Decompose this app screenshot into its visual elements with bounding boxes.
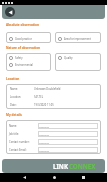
staticText: Location	[6, 77, 20, 81]
button[interactable]: Quality	[55, 56, 73, 60]
button[interactable]: Optional	[38, 147, 98, 153]
staticText: Safety	[15, 56, 23, 60]
staticText: Optional	[39, 141, 50, 144]
staticText: 54?-TEL	[34, 95, 44, 99]
button[interactable]: Good practice	[6, 35, 51, 43]
staticText: Optional	[39, 149, 50, 152]
staticText: Location:	[10, 95, 34, 99]
staticText: Job title:	[9, 132, 38, 136]
button[interactable]: Optional	[38, 123, 98, 129]
staticText: CONNEX	[69, 162, 96, 170]
staticText: Absolute observation	[6, 23, 40, 27]
staticText: Environmental	[15, 63, 33, 67]
button[interactable]: Back	[5, 7, 15, 17]
button[interactable]: Recent apps	[77, 173, 89, 182]
staticText: 19/3/2020 11:05	[34, 103, 54, 107]
staticText: Date:	[10, 103, 34, 107]
button[interactable]: Environmental	[6, 63, 33, 67]
staticText: Quality	[64, 56, 73, 60]
button[interactable]: Safety	[6, 56, 23, 60]
staticText: Contact Email:	[9, 148, 38, 152]
staticText: Optional	[39, 133, 50, 136]
button[interactable]: Area for improvement	[55, 35, 101, 43]
button[interactable]: Home	[48, 173, 60, 182]
staticText: LINK	[53, 162, 69, 170]
staticText: Good practice	[15, 37, 32, 41]
staticText: Optional	[39, 125, 50, 128]
staticText: Area for improvement	[64, 37, 91, 41]
staticText: Name:	[10, 87, 34, 91]
staticText: Unknown Doublefield	[34, 87, 61, 91]
button[interactable]: Back	[18, 173, 30, 182]
staticText: Name:	[9, 124, 38, 128]
staticText: Contact number:	[9, 140, 38, 144]
staticText: Nature of observation	[6, 46, 41, 50]
button[interactable]: Optional	[38, 139, 98, 145]
staticText: My details	[6, 113, 22, 117]
button[interactable]: Optional	[38, 131, 98, 137]
button[interactable]: LINK	[2, 159, 105, 173]
